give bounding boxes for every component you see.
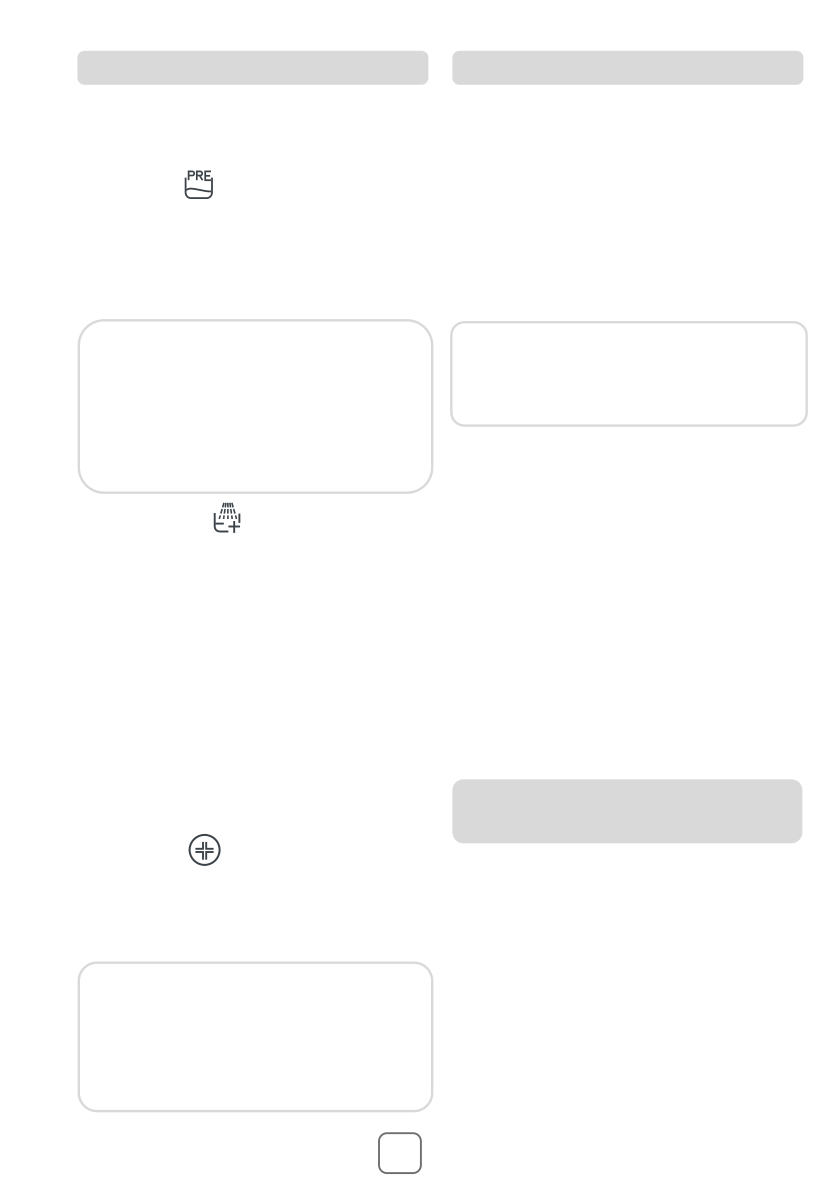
button[interactable]: Pre-wash: [185, 170, 213, 199]
button[interactable]: Select: [379, 1133, 421, 1173]
button[interactable]: [451, 322, 807, 426]
button[interactable]: [79, 320, 432, 493]
button[interactable]: [79, 963, 432, 1111]
button[interactable]: Intensive: [189, 834, 221, 866]
button[interactable]: [452, 779, 802, 843]
button[interactable]: Extra rinse: [212, 500, 241, 534]
